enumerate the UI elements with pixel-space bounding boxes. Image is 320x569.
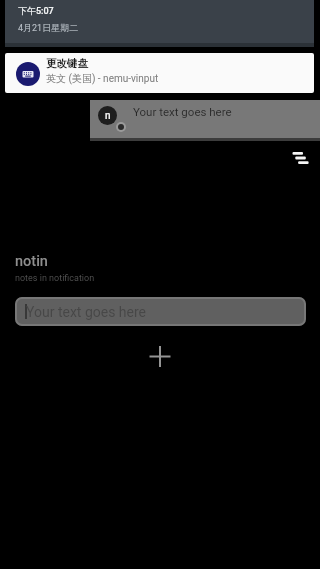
staticText: 下午5:07	[18, 5, 54, 16]
button[interactable]: Your text goes here	[15, 297, 306, 326]
staticText: Your text goes here	[133, 105, 232, 118]
button[interactable]	[288, 148, 312, 172]
button[interactable]: n	[90, 100, 320, 138]
staticText: n	[105, 110, 111, 122]
staticText: Your text goes here	[26, 304, 147, 320]
staticText: 更改键盘	[46, 57, 88, 70]
staticText: 4月21日星期二	[18, 22, 79, 33]
staticText: 英文 (美国) - nemu-vinput	[46, 72, 159, 85]
button[interactable]: 更改键盘	[5, 53, 314, 93]
staticText: notes in notification	[15, 273, 95, 284]
button[interactable]	[145, 342, 175, 372]
staticText: notin	[15, 253, 48, 270]
